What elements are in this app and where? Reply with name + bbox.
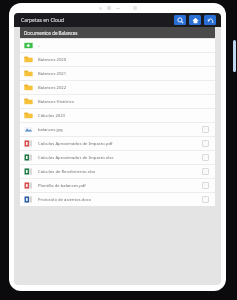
button[interactable]: Calculos de Rendimiento.xlsx (20, 165, 215, 178)
button[interactable]: Protocolo de asientos.docx (20, 193, 215, 206)
button[interactable]: Home (189, 15, 201, 25)
button[interactable]: balances.jpg (20, 123, 215, 136)
button[interactable]: Search (174, 15, 186, 25)
staticText: balances.jpg (38, 127, 202, 133)
button[interactable]: Balances Histórico (20, 95, 215, 108)
staticText: Calculos de Rendimiento.xlsx (38, 169, 202, 175)
staticText: Plantilla de balances.pdf (38, 183, 202, 189)
button[interactable]: Select Plantilla de balances.pdf (202, 182, 209, 189)
button[interactable]: Select balances.jpg (202, 126, 209, 133)
staticText: Carpetas en Cloud (21, 17, 65, 24)
staticText: Calculos Aproximados de Impacto.pdf (38, 141, 202, 147)
staticText: Balances 2022 (38, 85, 202, 91)
button[interactable]: Balances 2022 (20, 81, 215, 94)
button[interactable]: Calculos Aproximados de Impacto.xlsx (20, 151, 215, 164)
button[interactable]: Balances 2020 (20, 53, 215, 66)
button[interactable]: Cálculos 2023 (20, 109, 215, 122)
button[interactable]: Select Calculos Aproximados de Impacto.p… (202, 140, 209, 147)
button[interactable]: Calculos Aproximados de Impacto.pdf (20, 137, 215, 150)
staticText: Cálculos 2023 (38, 113, 202, 119)
staticText: Balances 2020 (38, 57, 202, 63)
button[interactable]: Select Calculos de Rendimiento.xlsx (202, 168, 209, 175)
staticText: Balances 2021 (38, 71, 202, 77)
staticText: Calculos Aproximados de Impacto.xlsx (38, 155, 202, 161)
staticText: Balances Histórico (38, 99, 202, 105)
button[interactable]: Plantilla de balances.pdf (20, 179, 215, 192)
button[interactable]: Balances 2021 (20, 67, 215, 80)
staticText: Protocolo de asientos.docx (38, 197, 202, 203)
button[interactable]: .. (20, 39, 215, 52)
button[interactable]: Select Calculos Aproximados de Impacto.x… (202, 154, 209, 161)
button[interactable]: Select Protocolo de asientos.docx (202, 196, 209, 203)
staticText: Documentos de Balances (24, 30, 78, 36)
button[interactable]: Back (204, 15, 216, 25)
